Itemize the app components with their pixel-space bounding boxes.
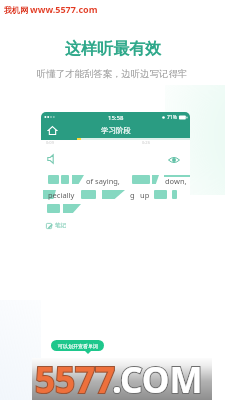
staticText: pecially (48, 190, 75, 200)
staticText: 可以划开查看单词 (58, 343, 98, 349)
staticText: 5577 (35, 356, 116, 400)
staticText: down, (165, 176, 187, 186)
staticText: 15:58 (108, 114, 124, 122)
staticText: www.5577.com (30, 3, 98, 15)
staticText: 这样听最有效 (65, 39, 161, 59)
staticText: up (140, 190, 150, 200)
staticText: 笔记 (55, 222, 66, 229)
button[interactable]: 可以划开查看单词 (51, 340, 104, 351)
staticText: .COM (112, 356, 203, 400)
staticText: 学习阶段 (101, 126, 131, 135)
staticText: 0:09 (46, 140, 54, 145)
button[interactable]: Home (45, 123, 59, 137)
staticText: 5577 (35, 356, 116, 400)
button[interactable]: Play audio (45, 152, 59, 166)
staticText: of saying, (86, 176, 120, 186)
staticText: 71% (167, 114, 177, 121)
staticText: 听懂了才能刮答案，边听边写记得牢 (37, 68, 188, 80)
staticText: .COM (112, 356, 203, 400)
button[interactable]: 笔记 (46, 222, 66, 229)
staticText: 0:26 (142, 140, 150, 145)
staticText: g (130, 190, 135, 200)
button[interactable]: Reveal answer (166, 152, 182, 168)
staticText: 我机网 (4, 5, 28, 15)
